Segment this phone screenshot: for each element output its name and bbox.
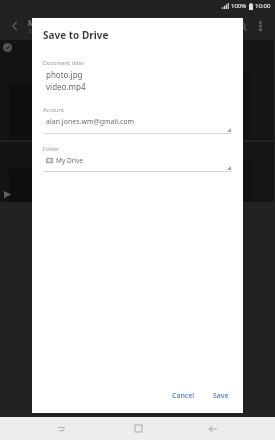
- staticText: 3 items selected: [28, 28, 66, 35]
- button[interactable]: Photo: [0, 40, 90, 140]
- staticText: 10:00: [255, 2, 271, 10]
- button[interactable]: Photo: [183, 40, 274, 140]
- staticText: Document titles: [43, 59, 84, 66]
- button[interactable]: Back: [200, 417, 226, 440]
- staticText: photo.jpg: [46, 69, 83, 80]
- button[interactable]: Photo: [0, 142, 90, 202]
- staticText: MEDIA: [28, 17, 55, 28]
- staticText: alan.jones.wm@gmail.com: [46, 117, 135, 127]
- staticText: Save to Drive: [43, 28, 109, 42]
- button[interactable]: Photo: [183, 142, 274, 202]
- staticText: Save: [213, 391, 229, 401]
- button[interactable]: Folder: [32, 145, 243, 172]
- staticText: Cancel: [172, 391, 195, 401]
- button[interactable]: Home: [125, 417, 151, 440]
- button[interactable]: Search: [233, 17, 251, 35]
- button[interactable]: Save: [207, 387, 235, 405]
- button[interactable]: Cancel: [166, 387, 201, 405]
- button[interactable]: Account: [32, 106, 243, 134]
- staticText: video.mp4: [46, 81, 86, 92]
- button[interactable]: Back: [6, 17, 24, 35]
- button[interactable]: Recents: [49, 417, 75, 440]
- button[interactable]: More options: [251, 17, 269, 35]
- staticText: Folder: [43, 145, 60, 152]
- button[interactable]: Photo: [91, 40, 182, 140]
- staticText: Account: [43, 106, 64, 113]
- button[interactable]: Photo: [91, 142, 182, 202]
- staticText: My Drive: [56, 156, 83, 165]
- staticText: 100%: [231, 2, 247, 10]
